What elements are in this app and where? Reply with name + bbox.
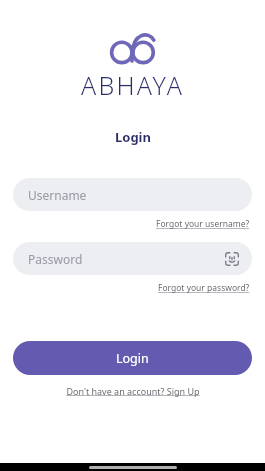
staticText: Don't have an account? Sign Up [66, 385, 200, 397]
button[interactable]: Don't have an account? Sign Up [62, 384, 204, 398]
button[interactable]: Forgot your password? [156, 281, 252, 295]
button[interactable]: Username [13, 178, 252, 211]
staticText: Username [28, 187, 87, 203]
staticText: Forgot your username? [156, 218, 250, 230]
button[interactable]: Password [13, 242, 252, 275]
staticText: ABHAYA [81, 68, 185, 102]
staticText: Login [115, 128, 151, 146]
button[interactable]: Login [13, 341, 252, 375]
button[interactable]: Forgot your username? [154, 217, 252, 231]
staticText: Password [28, 251, 223, 267]
staticText: Forgot your password? [158, 282, 250, 294]
button[interactable]: Sign in with Face ID [223, 250, 241, 268]
staticText: Login [116, 350, 149, 367]
